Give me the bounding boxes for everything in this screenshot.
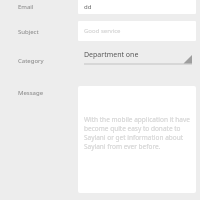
staticText: Message — [18, 89, 44, 97]
staticText: Category — [18, 57, 44, 65]
button[interactable]: Category dropdown — [84, 49, 192, 66]
staticText: Email — [18, 3, 34, 11]
staticText: dd — [84, 3, 92, 11]
button[interactable]: Good service — [78, 21, 196, 41]
button[interactable]: dd — [78, 0, 196, 14]
button[interactable]: With the mobile application it have beco… — [78, 86, 196, 193]
staticText: Department one — [84, 50, 139, 60]
staticText: Subject — [18, 28, 39, 36]
staticText: With the mobile application it have beco… — [84, 115, 191, 151]
staticText: Good service — [84, 27, 121, 35]
